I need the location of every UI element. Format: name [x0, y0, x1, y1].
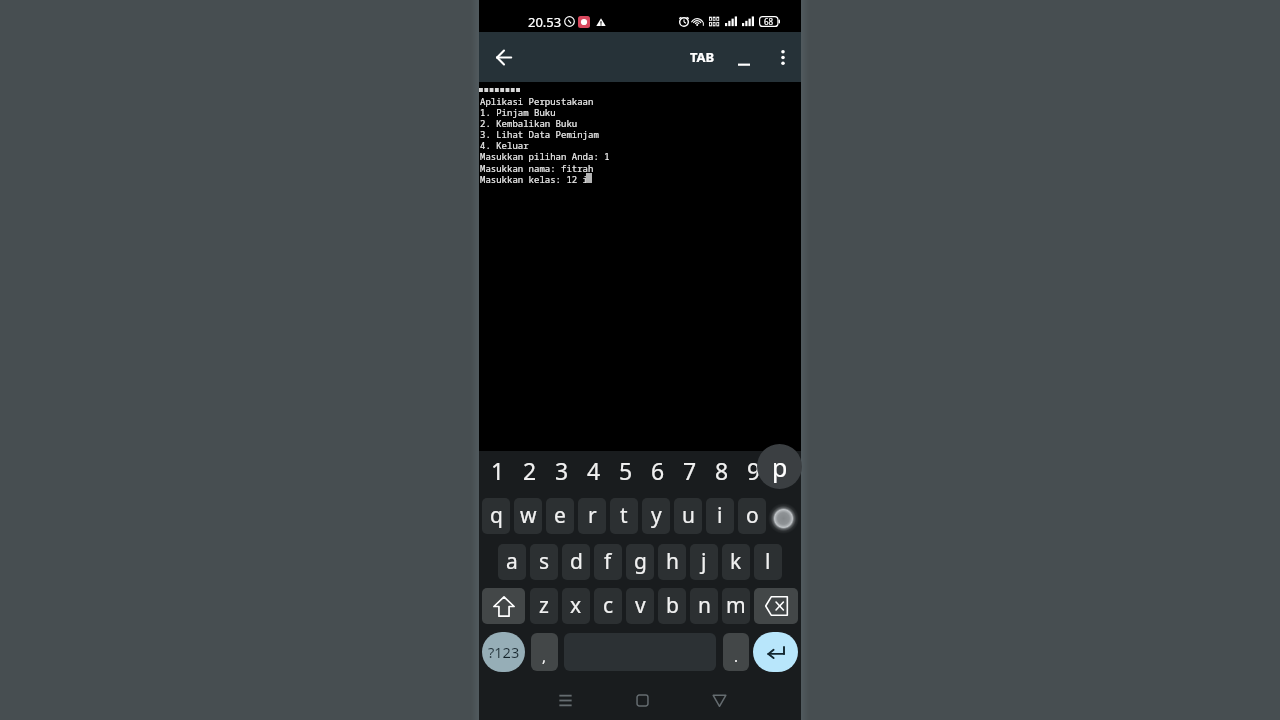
button[interactable]: .	[723, 633, 749, 671]
button[interactable]: n	[690, 588, 718, 624]
button[interactable]: 3	[546, 453, 578, 487]
button[interactable]: Shift	[482, 588, 525, 624]
staticText: 9	[747, 455, 761, 486]
staticText: y	[651, 501, 662, 530]
button[interactable]: 2	[514, 453, 546, 487]
staticText: ,	[542, 646, 547, 666]
staticText: Masukkan nama: fitrah	[480, 162, 594, 174]
staticText: w	[520, 501, 537, 530]
button[interactable]: z	[530, 588, 558, 624]
button[interactable]: x	[562, 588, 590, 624]
staticText: g	[634, 547, 647, 576]
staticText: m	[726, 591, 746, 620]
staticText: 3. Lihat Data Peminjam	[480, 128, 599, 140]
staticText: Masukkan pilihan Anda: 1	[480, 150, 610, 162]
staticText: d	[570, 547, 583, 576]
button[interactable]: 7	[674, 453, 706, 487]
button[interactable]: 9	[738, 453, 770, 487]
button[interactable]: j	[690, 544, 718, 580]
button[interactable]: TAB	[679, 39, 725, 75]
staticText: ?123	[488, 642, 520, 662]
button[interactable]: 0	[770, 453, 802, 487]
button[interactable]: More options	[766, 39, 800, 75]
staticText: f	[604, 547, 612, 576]
staticText: Masukkan kelas: 12 i	[480, 173, 589, 185]
staticText: 5	[619, 455, 633, 486]
button[interactable]: v	[626, 588, 654, 624]
staticText: 3	[555, 455, 569, 486]
staticText: a	[506, 547, 518, 576]
staticText: 2	[523, 455, 537, 486]
button[interactable]: y	[642, 498, 670, 534]
staticText: b	[666, 591, 679, 620]
staticText: n	[698, 591, 711, 620]
button[interactable]: p	[766, 501, 801, 536]
button[interactable]: ,	[531, 633, 558, 671]
staticText: k	[730, 547, 742, 576]
button[interactable]: a	[498, 544, 526, 580]
staticText: j	[701, 547, 707, 576]
button[interactable]: g	[626, 544, 654, 580]
button[interactable]: Back	[702, 683, 736, 717]
button[interactable]: b	[658, 588, 686, 624]
staticText: 8	[715, 455, 729, 486]
staticText: 4. Keluar	[480, 139, 529, 151]
button[interactable]: h	[658, 544, 686, 580]
staticText: TAB	[690, 48, 715, 66]
staticText: p	[772, 450, 788, 484]
button[interactable]: Terminal output	[479, 82, 801, 451]
button[interactable]: 6	[642, 453, 674, 487]
button[interactable]: Recents	[548, 683, 582, 717]
button[interactable]: q	[482, 498, 510, 534]
staticText: u	[682, 501, 695, 530]
staticText: 68	[764, 16, 774, 27]
button[interactable]: e	[546, 498, 574, 534]
button[interactable]: Minimize	[726, 39, 762, 75]
staticText: 2. Kembalikan Buku	[480, 117, 578, 129]
button[interactable]: c	[594, 588, 622, 624]
button[interactable]: s	[530, 544, 558, 580]
button[interactable]: m	[722, 588, 750, 624]
staticText: .	[734, 646, 739, 666]
button[interactable]: r	[578, 498, 606, 534]
staticText: 1	[491, 455, 505, 486]
button[interactable]: Backspace	[754, 588, 798, 624]
button[interactable]: u	[674, 498, 702, 534]
staticText: Aplikasi Perpustakaan	[480, 95, 594, 107]
staticText: q	[490, 501, 503, 530]
staticText: 1. Pinjam Buku	[480, 106, 556, 118]
staticText: c	[603, 591, 614, 620]
staticText: i	[717, 501, 723, 530]
staticText: v	[635, 591, 646, 620]
staticText: 4	[587, 455, 601, 486]
staticText: e	[554, 501, 566, 530]
button[interactable]: Home	[625, 683, 659, 717]
button[interactable]: l	[754, 544, 782, 580]
staticText: l	[765, 547, 771, 576]
button[interactable]: ?123	[482, 632, 525, 672]
button[interactable]: 1	[482, 453, 514, 487]
staticText: 7	[683, 455, 697, 486]
staticText: x	[570, 591, 582, 620]
staticText: r	[588, 501, 597, 530]
staticText: t	[620, 501, 628, 530]
button[interactable]: 4	[578, 453, 610, 487]
staticText: 20.53	[528, 13, 562, 31]
button[interactable]: w	[514, 498, 542, 534]
button[interactable]: i	[706, 498, 734, 534]
button[interactable]: f	[594, 544, 622, 580]
button[interactable]: Enter	[753, 632, 798, 672]
staticText: z	[539, 591, 549, 620]
button[interactable]: o	[738, 498, 766, 534]
staticText: 6	[651, 455, 665, 486]
staticText: h	[666, 547, 679, 576]
button[interactable]: Back	[486, 39, 522, 75]
staticText: o	[746, 501, 759, 530]
button[interactable]: t	[610, 498, 638, 534]
button[interactable]: d	[562, 544, 590, 580]
staticText: s	[539, 547, 550, 576]
button[interactable]: 8	[706, 453, 738, 487]
button[interactable]: 5	[610, 453, 642, 487]
button[interactable]: k	[722, 544, 750, 580]
